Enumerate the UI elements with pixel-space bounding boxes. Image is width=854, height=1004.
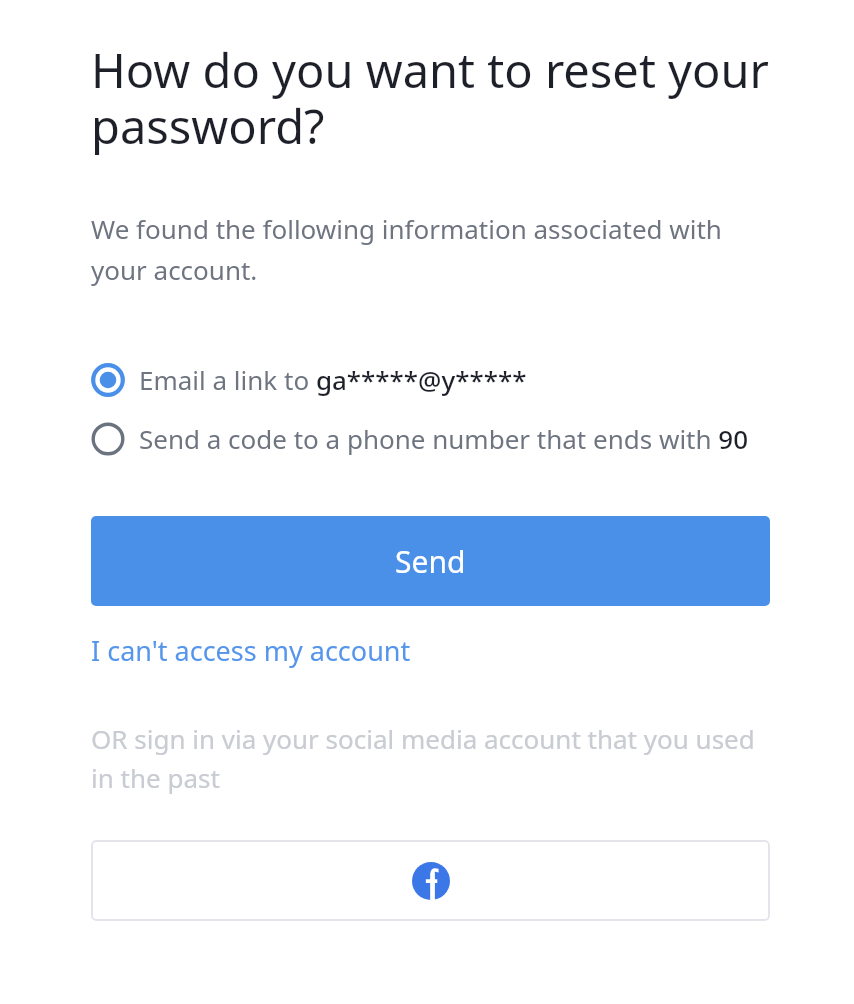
- staticText: How do you want to reset your password?: [91, 38, 770, 158]
- staticText: Email a link to ga*****@y*****: [139, 362, 527, 397]
- button[interactable]: Send: [91, 516, 770, 606]
- staticText: We found the following information assoc…: [91, 211, 770, 288]
- staticText: Send: [395, 541, 466, 582]
- staticText: OR sign in via your social media account…: [91, 721, 770, 796]
- staticText: Send a code to a phone number that ends …: [139, 421, 749, 456]
- button[interactable]: Email a link to ga*****@y*****: [91, 356, 770, 403]
- button[interactable]: Send a code to a phone number that ends …: [91, 415, 770, 462]
- button[interactable]: Sign in with Facebook: [91, 840, 770, 921]
- staticText: I can't access my account: [91, 632, 411, 669]
- button[interactable]: I can't access my account: [91, 628, 411, 673]
